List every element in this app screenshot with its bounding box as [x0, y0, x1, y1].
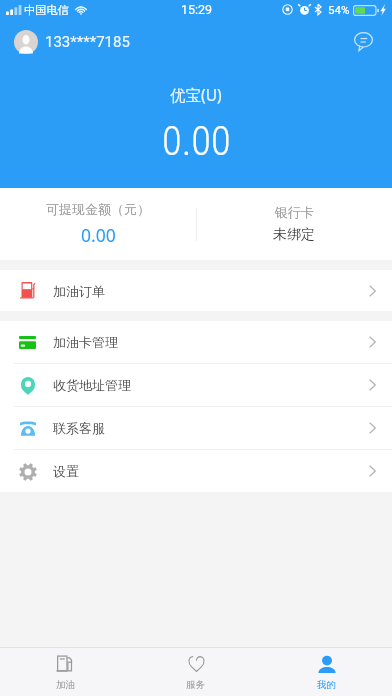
button[interactable]: 可提现金额（元）	[0, 188, 196, 260]
staticText: 中国电信	[24, 3, 69, 17]
staticText: 设置	[53, 463, 79, 479]
staticText: 133****7185	[45, 33, 130, 51]
staticText: 0.00	[162, 117, 231, 164]
staticText: 0.00	[81, 223, 116, 247]
button[interactable]: 联系客服	[0, 407, 392, 449]
staticText: 加油	[56, 679, 75, 691]
button[interactable]: 加油卡管理	[0, 321, 392, 363]
button[interactable]: 加油订单	[0, 270, 392, 311]
button[interactable]: 服务	[130, 648, 261, 696]
staticText: 银行卡	[275, 204, 314, 220]
staticText: 服务	[186, 679, 205, 691]
staticText: 收货地址管理	[53, 377, 131, 393]
staticText: 加油订单	[53, 283, 105, 299]
staticText: 可提现金额（元）	[46, 201, 150, 217]
staticText: 优宝(U)	[170, 84, 222, 105]
staticText: 未绑定	[273, 226, 315, 244]
button[interactable]: Messages	[348, 26, 378, 54]
staticText: 加油卡管理	[53, 334, 118, 350]
staticText: 我的	[317, 679, 336, 691]
button[interactable]: 加油	[0, 648, 130, 696]
staticText: 15:29	[181, 2, 213, 17]
button[interactable]: 银行卡	[196, 188, 392, 260]
button[interactable]: 我的	[261, 648, 392, 696]
staticText: 联系客服	[53, 420, 105, 436]
staticText: 54%	[328, 3, 350, 16]
button[interactable]: 收货地址管理	[0, 364, 392, 406]
button[interactable]: 设置	[0, 450, 392, 492]
